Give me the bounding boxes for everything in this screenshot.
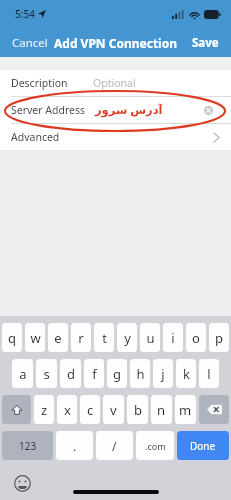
staticText: e xyxy=(54,329,62,347)
button[interactable]: Description xyxy=(0,70,231,96)
button[interactable]: Emoji keyboard xyxy=(14,475,31,492)
button[interactable]: g xyxy=(107,359,127,388)
staticText: Done xyxy=(190,439,216,453)
staticText: f xyxy=(92,365,97,383)
button[interactable]: Server Address xyxy=(0,97,231,123)
staticText: 5:54 xyxy=(15,7,35,21)
button[interactable]: a xyxy=(12,359,33,388)
staticText: n xyxy=(157,401,166,419)
staticText: q xyxy=(8,329,16,347)
button[interactable]: Clear text xyxy=(199,101,217,119)
button[interactable]: Advanced xyxy=(0,124,231,150)
button[interactable]: . xyxy=(56,431,93,460)
staticText: 123 xyxy=(19,439,37,453)
staticText: s xyxy=(43,365,50,383)
staticText: r xyxy=(78,329,84,347)
staticText: Description xyxy=(11,76,68,90)
staticText: c xyxy=(87,401,94,419)
staticText: Add VPN Connection xyxy=(54,35,177,51)
button[interactable]: Cancel xyxy=(0,30,60,56)
staticText: Advanced xyxy=(11,130,60,144)
staticText: k xyxy=(183,365,190,383)
staticText: a xyxy=(19,365,27,383)
button[interactable]: f xyxy=(84,359,104,388)
button[interactable]: c xyxy=(80,395,100,424)
staticText: m xyxy=(179,401,192,419)
button[interactable]: m xyxy=(175,395,196,424)
button[interactable]: Save xyxy=(180,30,231,56)
staticText: h xyxy=(136,365,145,383)
button[interactable]: z xyxy=(34,395,54,424)
button[interactable]: v xyxy=(103,395,124,424)
button[interactable]: d xyxy=(60,359,81,388)
button[interactable]: s xyxy=(36,359,57,388)
staticText: t xyxy=(102,329,107,347)
staticText: / xyxy=(112,438,117,454)
button[interactable]: .com xyxy=(136,431,174,460)
staticText: .com xyxy=(145,440,166,452)
button[interactable]: b xyxy=(127,395,148,424)
staticText: g xyxy=(113,365,121,383)
staticText: i xyxy=(171,329,175,347)
staticText: . xyxy=(73,438,77,454)
button[interactable]: 123 xyxy=(2,431,53,460)
button[interactable]: / xyxy=(96,431,133,460)
staticText: w xyxy=(30,329,41,347)
staticText: p xyxy=(215,329,223,347)
staticText: z xyxy=(41,401,48,419)
button[interactable]: p xyxy=(209,323,229,352)
button[interactable]: o xyxy=(186,323,206,352)
staticText: آدرس سرور xyxy=(95,102,163,118)
staticText: l xyxy=(207,365,211,383)
staticText: u xyxy=(146,329,155,347)
button[interactable]: y xyxy=(117,323,137,352)
button[interactable]: u xyxy=(140,323,160,352)
button[interactable]: k xyxy=(176,359,196,388)
button[interactable]: t xyxy=(94,323,114,352)
staticText: y xyxy=(124,329,131,347)
staticText: j xyxy=(161,365,165,383)
button[interactable]: j xyxy=(153,359,173,388)
staticText: Save xyxy=(192,35,219,51)
button[interactable]: i xyxy=(163,323,183,352)
staticText: Server Address xyxy=(11,103,86,117)
button[interactable]: n xyxy=(151,395,172,424)
button[interactable]: w xyxy=(25,323,45,352)
button[interactable]: Shift xyxy=(2,395,31,424)
button[interactable]: Backspace xyxy=(199,395,229,424)
staticText: v xyxy=(110,401,117,419)
button[interactable]: x xyxy=(57,395,77,424)
staticText: d xyxy=(67,365,75,383)
button[interactable]: Done xyxy=(177,431,229,460)
staticText: o xyxy=(192,329,200,347)
staticText: x xyxy=(64,401,71,419)
button[interactable]: r xyxy=(71,323,91,352)
button[interactable]: e xyxy=(48,323,68,352)
staticText: Optional xyxy=(93,76,136,90)
staticText: Cancel xyxy=(12,35,48,51)
button[interactable]: h xyxy=(130,359,150,388)
staticText: b xyxy=(134,401,142,419)
button[interactable]: q xyxy=(2,323,22,352)
button[interactable]: l xyxy=(199,359,219,388)
